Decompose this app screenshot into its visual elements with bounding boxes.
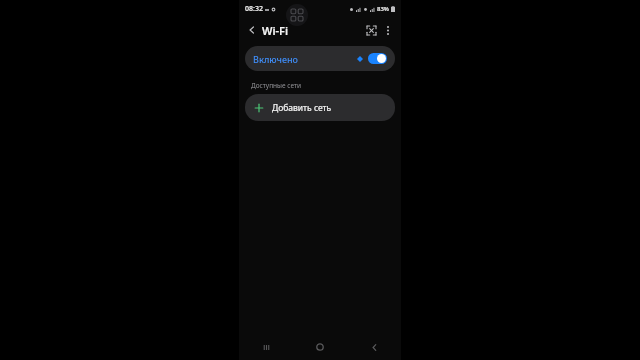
staticText: 83% xyxy=(377,5,389,13)
button[interactable]: More options xyxy=(380,22,396,38)
button[interactable]: Multi window xyxy=(286,4,308,26)
staticText: 08:32 xyxy=(245,4,263,14)
button[interactable]: Home xyxy=(293,334,347,360)
button[interactable]: Wi-Fi on xyxy=(368,53,387,64)
button[interactable]: Recent apps xyxy=(239,334,293,360)
staticText: Доступные сети xyxy=(251,81,401,90)
staticText: Добавить сеть xyxy=(272,102,332,114)
button[interactable]: Back xyxy=(347,334,401,360)
button[interactable]: Включено xyxy=(245,46,395,71)
button[interactable]: Добавить сеть xyxy=(245,94,395,121)
staticText: Wi-Fi xyxy=(262,23,289,38)
staticText: Включено xyxy=(253,53,299,65)
button[interactable]: Scan QR code xyxy=(362,21,380,39)
button[interactable]: Back xyxy=(244,22,260,38)
